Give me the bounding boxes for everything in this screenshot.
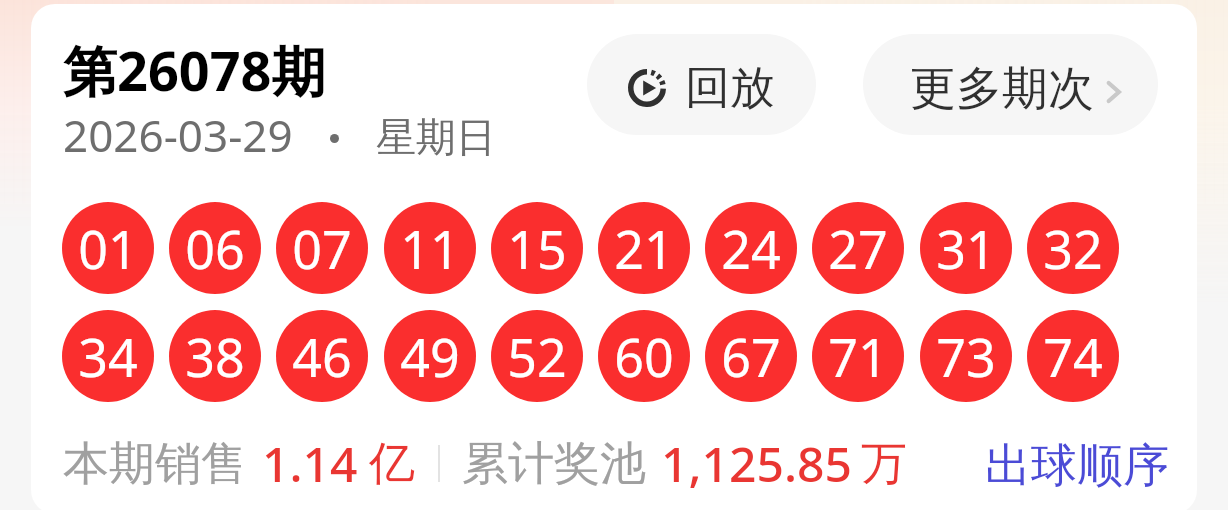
button[interactable]: Replay draw <box>587 34 816 135</box>
staticText: 46 <box>292 321 352 392</box>
staticText: 回放 <box>685 60 775 117</box>
staticText: 31 <box>936 213 996 284</box>
staticText: 出球顺序 <box>985 437 1169 495</box>
button[interactable]: 49 <box>384 310 476 402</box>
button[interactable]: 71 <box>812 310 904 402</box>
button[interactable]: 出球顺序 <box>967 425 1187 507</box>
button[interactable]: 更多期次 <box>863 34 1158 135</box>
staticText: 06 <box>185 213 245 284</box>
staticText: 38 <box>185 321 245 392</box>
staticText: 01 <box>78 213 138 284</box>
staticText: 本期销售 <box>63 435 247 493</box>
staticText: 60 <box>614 321 674 392</box>
staticText: 52 <box>507 321 567 392</box>
staticText: 万 <box>861 435 907 493</box>
staticText: 24 <box>721 213 781 284</box>
button[interactable]: 34 <box>62 310 154 402</box>
staticText: 21 <box>614 213 674 284</box>
staticText: 27 <box>828 213 888 284</box>
button[interactable]: 73 <box>920 310 1012 402</box>
staticText: 1,125.85 <box>661 431 852 496</box>
staticText: 67 <box>721 321 781 392</box>
staticText: 15 <box>507 213 567 284</box>
staticText: 74 <box>1043 321 1103 392</box>
staticText: 49 <box>400 321 460 392</box>
staticText: 星期日 <box>376 112 496 162</box>
button[interactable]: 38 <box>169 310 261 402</box>
staticText: 1.14 <box>262 431 358 496</box>
staticText: 32 <box>1043 213 1103 284</box>
staticText: 11 <box>400 213 460 284</box>
other: Replay draw <box>628 69 666 107</box>
button[interactable]: 24 <box>705 202 797 294</box>
button[interactable]: 27 <box>812 202 904 294</box>
staticText: 更多期次 <box>910 60 1094 118</box>
staticText: 07 <box>292 213 352 284</box>
button[interactable]: 74 <box>1027 310 1119 402</box>
staticText: 第26078期 <box>63 33 326 107</box>
staticText: 累计奖池 <box>462 435 646 493</box>
staticText: 71 <box>828 321 888 392</box>
button[interactable]: 60 <box>598 310 690 402</box>
staticText: 34 <box>78 321 138 392</box>
button[interactable]: 11 <box>384 202 476 294</box>
staticText: 2026-03-29 <box>63 105 293 165</box>
button[interactable]: 52 <box>491 310 583 402</box>
staticText: 亿 <box>369 435 415 493</box>
button[interactable]: 15 <box>491 202 583 294</box>
button[interactable]: 67 <box>705 310 797 402</box>
button[interactable]: 01 <box>62 202 154 294</box>
button[interactable]: 32 <box>1027 202 1119 294</box>
button[interactable]: 06 <box>169 202 261 294</box>
button[interactable]: 46 <box>276 310 368 402</box>
button[interactable]: 07 <box>276 202 368 294</box>
button[interactable]: 21 <box>598 202 690 294</box>
staticText: 73 <box>936 321 996 392</box>
button[interactable]: 31 <box>920 202 1012 294</box>
